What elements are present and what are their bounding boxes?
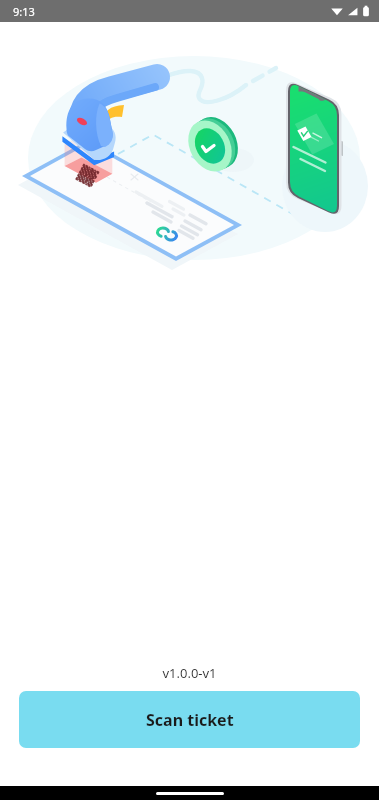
staticText: 9:13 <box>13 4 35 19</box>
staticText: v1.0.0-v1 <box>0 664 379 682</box>
staticText: Scan ticket <box>146 709 234 731</box>
button[interactable]: Scan ticket <box>19 691 360 748</box>
